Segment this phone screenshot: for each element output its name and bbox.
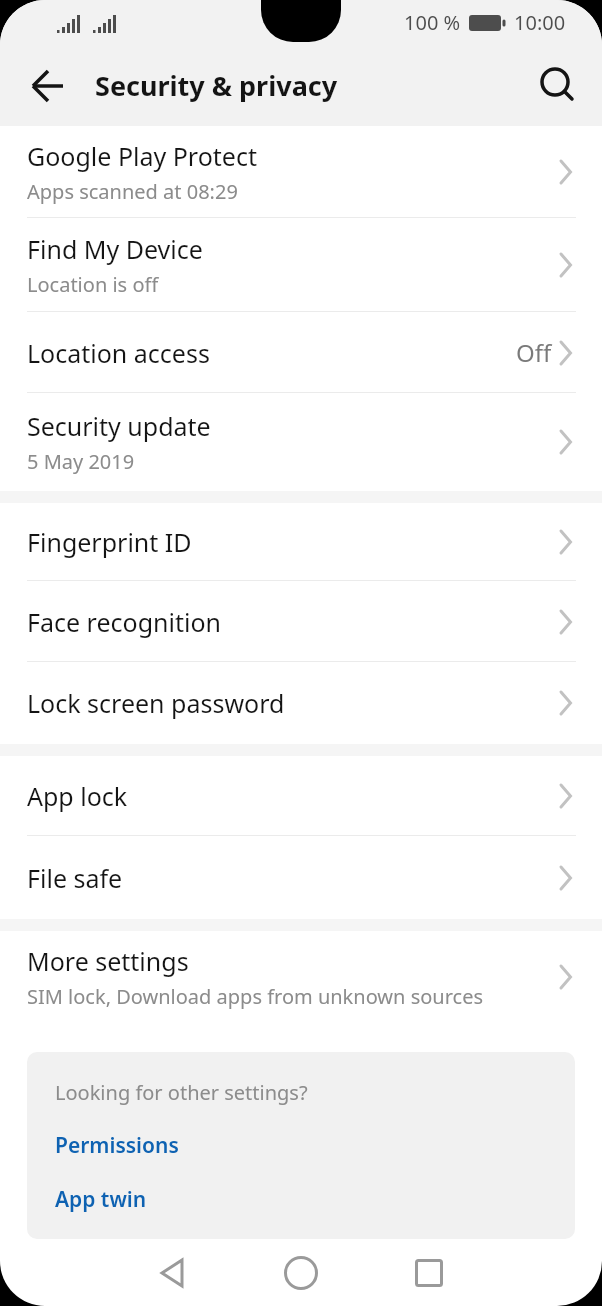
staticText: Lock screen password xyxy=(27,686,285,720)
button[interactable] xyxy=(26,64,70,108)
button[interactable]: Location access xyxy=(0,312,602,393)
staticText: Looking for other settings? xyxy=(55,1079,308,1106)
staticText: Permissions xyxy=(55,1131,179,1160)
staticText: Face recognition xyxy=(27,605,221,639)
staticText: App twin xyxy=(55,1185,147,1214)
button[interactable]: App lock xyxy=(0,756,602,836)
staticText: 100 % xyxy=(404,9,461,36)
button[interactable]: Google Play Protect xyxy=(0,126,602,218)
button[interactable]: Find My Device xyxy=(0,218,602,312)
staticText: Location is off xyxy=(27,271,159,298)
button[interactable]: More settings xyxy=(0,931,602,1023)
button[interactable]: Lock screen password xyxy=(0,662,602,744)
staticText: SIM lock, Download apps from unknown sou… xyxy=(27,983,483,1010)
button[interactable] xyxy=(401,1245,457,1301)
button[interactable]: File safe xyxy=(0,836,602,919)
staticText: More settings xyxy=(27,944,189,978)
button[interactable]: Permissions xyxy=(55,1131,179,1160)
staticText: 10:00 xyxy=(514,9,566,36)
staticText: File safe xyxy=(27,861,123,895)
staticText: Google Play Protect xyxy=(27,139,257,173)
button[interactable] xyxy=(145,1245,201,1301)
staticText: App lock xyxy=(27,779,128,813)
button[interactable]: Face recognition xyxy=(0,581,602,662)
staticText: Find My Device xyxy=(27,232,203,266)
staticText: Fingerprint ID xyxy=(27,525,192,559)
button[interactable]: App twin xyxy=(55,1185,147,1214)
button[interactable] xyxy=(536,64,580,108)
staticText: Off xyxy=(516,336,552,369)
staticText: 5 May 2019 xyxy=(27,448,135,475)
staticText: Security update xyxy=(27,409,211,443)
staticText: Apps scanned at 08:29 xyxy=(27,178,238,205)
button[interactable] xyxy=(273,1245,329,1301)
staticText: Security & privacy xyxy=(95,67,338,104)
button[interactable]: Fingerprint ID xyxy=(0,503,602,581)
staticText: Location access xyxy=(27,336,210,370)
button[interactable]: Security update xyxy=(0,393,602,491)
